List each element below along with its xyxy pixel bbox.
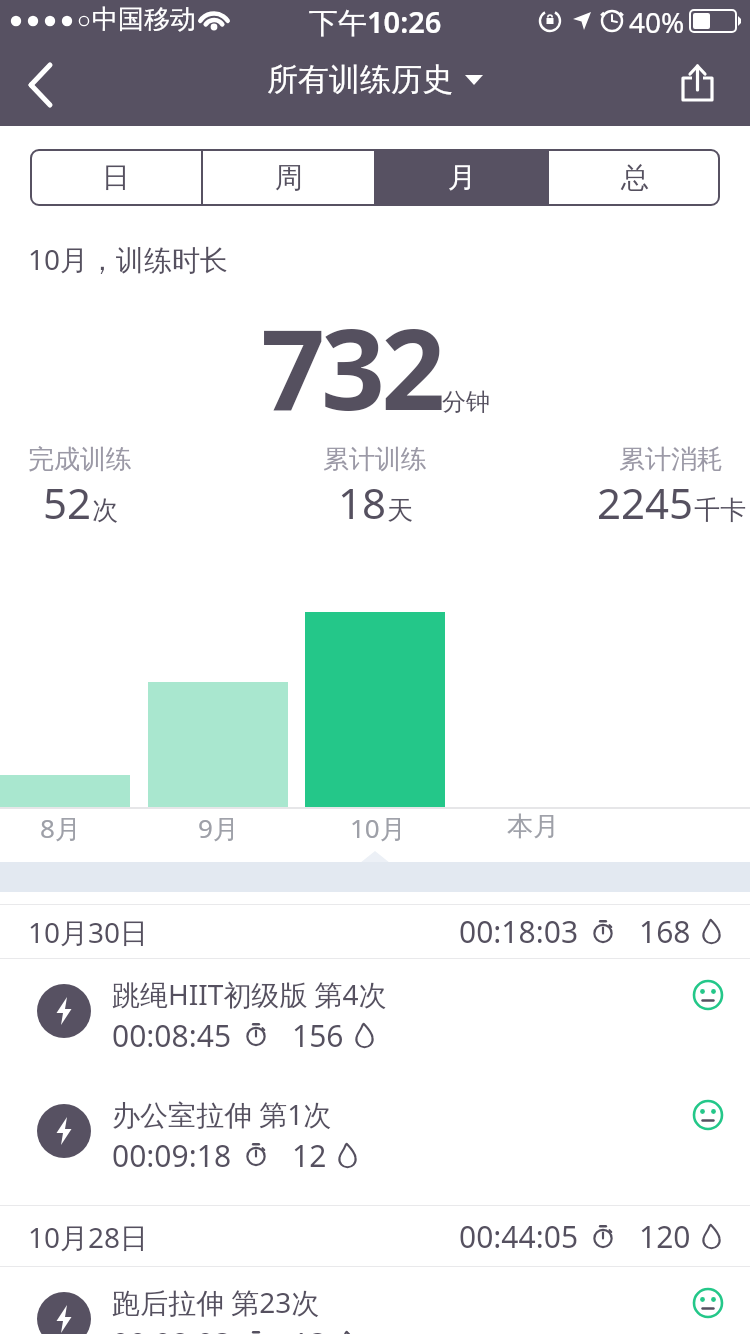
button[interactable]: 周 [203,149,374,206]
button[interactable] [10,55,70,115]
staticText: 00:44:05 [459,1216,579,1257]
staticText: 次 [92,494,118,527]
staticText: 156 [292,1015,344,1056]
staticText: 月 [448,160,476,195]
staticText: 40% [629,3,685,41]
staticText: 累计消耗 [619,443,723,476]
staticText: 下午10:26 [309,2,442,42]
staticText: 8月 [40,810,81,846]
button[interactable]: 日 [30,149,201,206]
staticText: 所有训练历史 [267,60,453,99]
staticText: 本月 [507,810,559,843]
staticText: 00:18:03 [459,911,579,952]
staticText: 周 [275,160,303,195]
staticText: 10月30日 [28,913,149,951]
staticText: 中国移动 [92,3,196,36]
button[interactable]: 10月30日 [0,904,750,959]
staticText: 168 [639,911,691,952]
staticText: 00:08:03 [112,1323,232,1334]
button[interactable]: 10月28日 [0,1205,750,1267]
staticText: 120 [639,1216,691,1257]
staticText: 732 [261,290,442,443]
staticText: 12 [292,1135,327,1176]
button[interactable]: 办公室拉伸 第1次 [0,1079,750,1202]
staticText: 分钟 [442,387,490,417]
staticText: 日 [102,160,130,195]
staticText: 总 [621,160,649,195]
staticText: 10月 [350,810,406,846]
staticText: 9月 [198,810,239,846]
staticText: 00:08:45 [112,1015,232,1056]
staticText: 13 [292,1323,327,1334]
staticText: 18 [338,474,387,531]
button[interactable] [666,52,732,118]
staticText: 2245 [597,474,694,531]
staticText: 10月，训练时长 [28,240,229,278]
staticText: 跑后拉伸 第23次 [112,1283,320,1321]
staticText: 完成训练 [28,443,132,476]
button[interactable]: 所有训练历史 [267,60,483,99]
staticText: 天 [387,494,413,527]
button[interactable]: 跑后拉伸 第23次 [0,1267,750,1334]
staticText: 00:09:18 [112,1135,232,1176]
staticText: 累计训练 [323,443,427,476]
staticText: 跳绳HIIT初级版 第4次 [112,975,387,1013]
button[interactable]: 跳绳HIIT初级版 第4次 [0,959,750,1082]
button[interactable]: 总 [549,149,720,206]
button[interactable]: 月 [376,149,547,206]
staticText: 52 [43,474,92,531]
staticText: 千卡 [694,494,746,527]
staticText: 10月28日 [28,1218,149,1256]
staticText: 办公室拉伸 第1次 [112,1095,332,1133]
